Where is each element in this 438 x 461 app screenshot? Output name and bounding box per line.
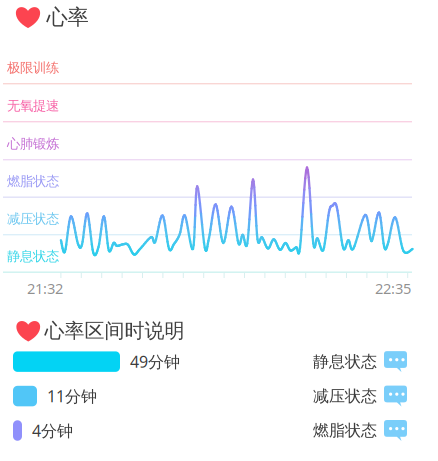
button[interactable]: 静息状态: [313, 351, 407, 372]
staticText: 21:32: [27, 278, 63, 298]
staticText: 燃脂状态: [7, 173, 59, 189]
staticText: 22:35: [375, 278, 411, 298]
button[interactable]: 燃脂状态: [313, 420, 407, 441]
staticText: 静息状态: [313, 352, 377, 371]
staticText: 心率区间时说明: [44, 318, 184, 343]
staticText: 无氧提速: [7, 97, 59, 114]
staticText: 燃脂状态: [313, 421, 377, 440]
staticText: 心肺锻炼: [7, 135, 59, 152]
staticText: 减压状态: [313, 386, 377, 406]
staticText: 49分钟: [130, 351, 180, 372]
staticText: 减压状态: [7, 210, 59, 227]
staticText: 静息状态: [7, 248, 59, 264]
button[interactable]: 减压状态: [313, 386, 407, 407]
staticText: 极限训练: [7, 59, 59, 76]
staticText: 心率: [46, 4, 88, 30]
staticText: 4分钟: [32, 420, 73, 441]
staticText: 11分钟: [47, 385, 97, 407]
